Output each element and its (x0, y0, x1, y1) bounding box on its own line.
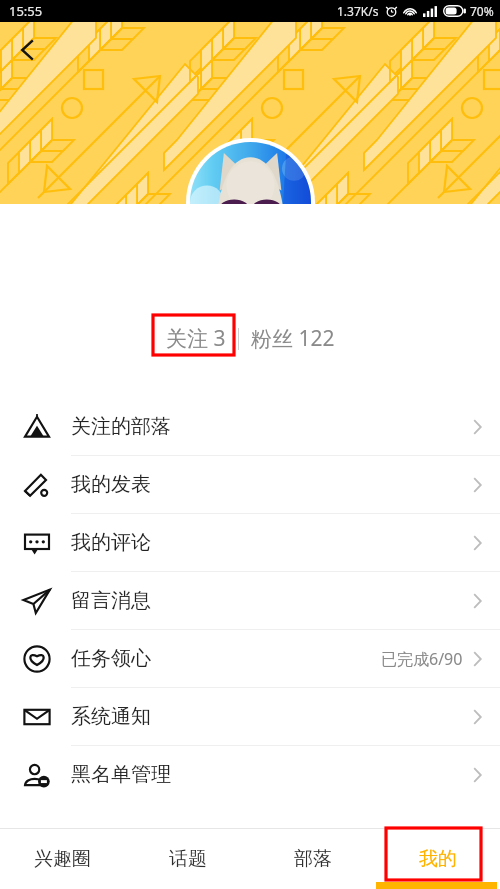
staticText: 1.37K/s (337, 3, 379, 19)
button[interactable]: Profile photo (186, 138, 315, 204)
staticText: 黑名单管理 (71, 762, 171, 787)
button[interactable]: 黑名单管理 (0, 746, 500, 803)
staticText: 留言消息 (71, 588, 151, 613)
staticText: 我的评论 (71, 530, 151, 555)
button[interactable]: 任务领心 (0, 630, 500, 687)
button[interactable]: 部落 (250, 829, 375, 889)
button[interactable]: 关注 3 (154, 319, 238, 358)
button[interactable]: 系统通知 (0, 688, 500, 745)
staticText: 我的发表 (71, 472, 151, 497)
staticText: 粉丝 122 (251, 324, 335, 353)
staticText: 关注 3 (166, 324, 226, 353)
button[interactable]: Back (6, 28, 50, 72)
staticText: 已完成6/90 (381, 648, 463, 670)
staticText: 部落 (294, 847, 332, 871)
button[interactable]: 我的 (375, 829, 500, 889)
staticText: 任务领心 (71, 646, 151, 671)
staticText: 70% (470, 3, 494, 19)
staticText: 话题 (169, 847, 207, 871)
button[interactable]: 兴趣圈 (0, 829, 125, 889)
button[interactable]: 粉丝 122 (239, 319, 347, 358)
staticText: 15:55 (9, 2, 43, 20)
staticText: 系统通知 (71, 704, 151, 729)
staticText: 我的 (419, 847, 457, 871)
button[interactable]: 我的评论 (0, 514, 500, 571)
staticText: 关注的部落 (71, 414, 171, 439)
button[interactable]: 我的发表 (0, 456, 500, 513)
button[interactable]: 关注的部落 (0, 398, 500, 455)
button[interactable]: 留言消息 (0, 572, 500, 629)
staticText: 兴趣圈 (34, 847, 91, 871)
button[interactable]: 话题 (125, 829, 250, 889)
